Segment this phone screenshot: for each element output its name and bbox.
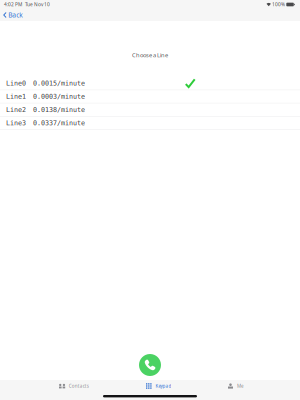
staticText: 0.0138/minute xyxy=(33,106,85,114)
staticText: 100% xyxy=(271,1,285,8)
button[interactable]: Contacts xyxy=(59,380,89,391)
button[interactable]: Back xyxy=(0,9,27,21)
staticText: Choose a Line xyxy=(132,51,168,59)
staticText: Line2 xyxy=(6,106,26,114)
button[interactable]: Keypad xyxy=(146,380,171,391)
staticText: Contacts xyxy=(69,383,89,389)
staticText: 0.0337/minute xyxy=(33,119,85,127)
staticText: Tue Nov 10 xyxy=(22,1,50,8)
staticText: 4:02 PM xyxy=(4,1,22,8)
button[interactable]: Line3 xyxy=(0,117,300,130)
staticText: Keypad xyxy=(155,383,171,389)
staticText: Me xyxy=(237,383,244,389)
staticText: 0.0003/minute xyxy=(33,93,85,100)
button[interactable]: Line2 xyxy=(0,103,300,117)
button[interactable]: Line1 xyxy=(0,90,300,103)
staticText: Back xyxy=(8,10,23,20)
staticText: Line0 xyxy=(6,79,26,87)
staticText: Line1 xyxy=(6,93,26,100)
staticText: Line3 xyxy=(6,119,26,127)
button[interactable]: Call xyxy=(139,354,161,376)
button[interactable]: Me xyxy=(227,380,244,391)
staticText: 0.0015/minute xyxy=(33,79,85,87)
button[interactable]: Line0 xyxy=(0,77,300,90)
